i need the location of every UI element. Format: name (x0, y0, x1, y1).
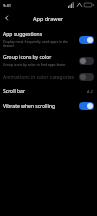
button[interactable]: Group icons by color (0, 51, 97, 70)
staticText: A-Z (87, 89, 94, 94)
staticText: Vibrate when scrolling (3, 103, 56, 110)
button[interactable]: Back (0, 11, 14, 25)
staticText: Animations in color categories (3, 74, 75, 81)
staticText: App drawer (33, 15, 64, 22)
staticText: Display most frequently used apps in the… (3, 39, 68, 48)
staticText: 9:41 (3, 3, 11, 8)
staticText: Group icons by color to find apps faster (3, 62, 66, 67)
staticText: Group icons by color (3, 54, 52, 61)
staticText: Scroll bar (3, 88, 87, 95)
button[interactable]: Animations in color categories (0, 70, 97, 84)
button[interactable]: Vibrate when scrolling (0, 99, 97, 113)
staticText: App suggestions (3, 31, 43, 38)
button[interactable]: Scroll bar (0, 84, 97, 99)
button[interactable]: App suggestions (0, 28, 97, 51)
